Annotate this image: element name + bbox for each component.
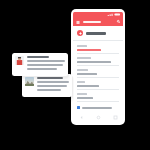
button[interactable]: Menu (76, 20, 80, 24)
button[interactable] (73, 105, 123, 110)
button[interactable] (73, 29, 123, 37)
button[interactable]: Home (95, 114, 101, 120)
button[interactable]: Recents (112, 114, 118, 120)
button[interactable] (22, 74, 72, 97)
button[interactable] (12, 53, 68, 76)
button[interactable]: Menu (73, 17, 123, 26)
button[interactable]: Search (117, 20, 120, 23)
button[interactable]: Back (78, 114, 84, 120)
